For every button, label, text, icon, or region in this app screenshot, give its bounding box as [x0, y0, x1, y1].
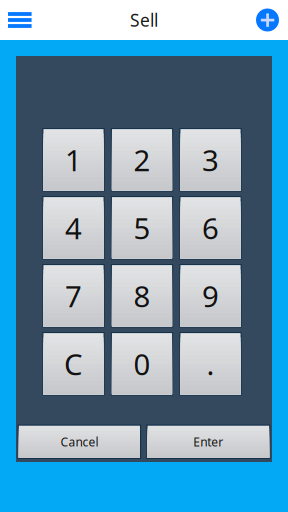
- button[interactable]: 6: [179, 196, 242, 259]
- button[interactable]: 9: [179, 264, 242, 327]
- button[interactable]: 0: [111, 332, 173, 395]
- staticText: 2: [133, 140, 150, 179]
- button[interactable]: 3: [179, 128, 242, 191]
- staticText: .: [206, 344, 214, 383]
- staticText: 6: [202, 208, 219, 247]
- button[interactable]: C: [42, 332, 105, 395]
- button[interactable]: Add: [244, 0, 288, 40]
- button[interactable]: 4: [42, 196, 105, 259]
- staticText: 0: [133, 344, 150, 383]
- button[interactable]: .: [179, 332, 242, 395]
- button[interactable]: Menu: [0, 0, 44, 40]
- staticText: 5: [133, 208, 150, 247]
- staticText: Sell: [130, 8, 158, 31]
- staticText: 1: [65, 140, 82, 179]
- button[interactable]: 8: [111, 264, 173, 327]
- staticText: 7: [65, 276, 82, 315]
- staticText: Enter: [193, 434, 223, 450]
- staticText: C: [64, 344, 83, 383]
- button[interactable]: Cancel: [18, 424, 141, 459]
- button[interactable]: 2: [111, 128, 173, 191]
- staticText: 4: [65, 208, 82, 247]
- button[interactable]: 1: [42, 128, 105, 191]
- button[interactable]: 7: [42, 264, 105, 327]
- staticText: Cancel: [60, 434, 98, 450]
- staticText: 9: [202, 276, 219, 315]
- button[interactable]: Enter: [146, 424, 270, 459]
- staticText: 3: [202, 140, 219, 179]
- staticText: 8: [133, 276, 150, 315]
- button[interactable]: 5: [111, 196, 173, 259]
